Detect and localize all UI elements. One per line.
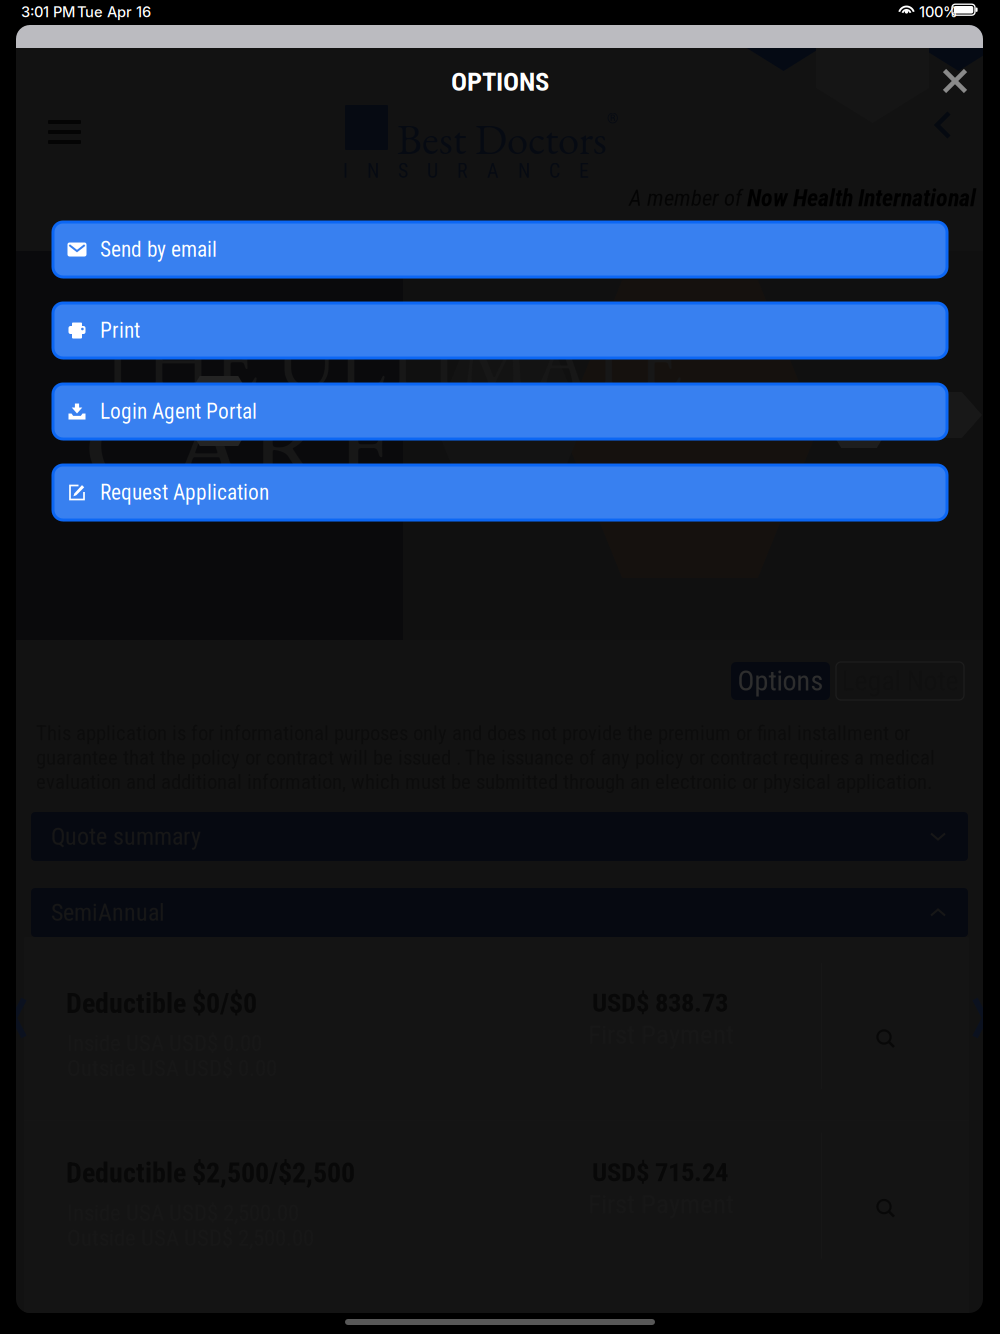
staticText: AR	[898, 400, 936, 441]
staticText: Request Application	[100, 480, 269, 505]
staticText: USD$ 715.24	[592, 1157, 728, 1188]
button[interactable]: Login Agent Portal	[53, 384, 947, 439]
staticText: Best Doctors	[397, 111, 607, 167]
staticText: Deductible $2,500/$2,500	[66, 1157, 355, 1189]
staticText: SemiAnnual	[51, 898, 165, 926]
staticText: A member of	[629, 185, 747, 211]
staticText: Login Agent Portal	[100, 399, 257, 424]
staticText: Deductible $0/$0	[66, 987, 257, 1020]
staticText: 3:01 PM	[21, 3, 75, 21]
staticText: THE ULTIMATE	[90, 306, 683, 414]
staticText: ®	[607, 110, 619, 127]
staticText: USD$ 838.73	[592, 987, 728, 1018]
staticText: Tue Apr 16	[77, 3, 151, 21]
staticText: Print	[100, 318, 140, 343]
staticText: OPTIONS	[451, 66, 549, 97]
staticText: Send by email	[100, 237, 217, 262]
staticText: Quote summary	[51, 822, 201, 850]
button[interactable]: Options	[731, 662, 830, 700]
button[interactable]: Send by email	[53, 222, 947, 277]
staticText: Now Health International	[747, 184, 976, 212]
button[interactable]: Menu	[34, 106, 95, 158]
staticText: CARE	[84, 368, 398, 521]
staticText: 100%	[919, 3, 958, 21]
staticText: TM	[252, 394, 293, 431]
button[interactable]: Close	[930, 56, 980, 106]
button[interactable]: Print	[53, 303, 947, 358]
staticText: Options	[737, 665, 823, 697]
button[interactable]: Request Application	[53, 465, 947, 520]
